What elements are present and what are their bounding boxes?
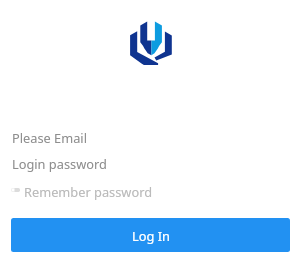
staticText: Log In — [132, 227, 170, 244]
button[interactable]: Log In — [11, 218, 290, 252]
staticText: Login password — [12, 155, 107, 172]
button[interactable]: Remember password — [10, 183, 153, 200]
staticText: Remember password — [24, 183, 153, 200]
staticText: Please Email — [12, 129, 87, 146]
